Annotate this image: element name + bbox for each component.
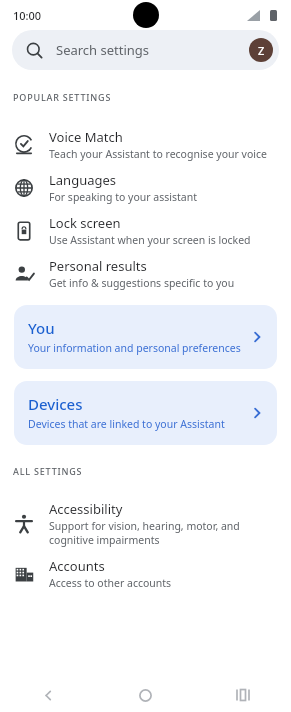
staticText: Voice Match <box>49 128 123 146</box>
button[interactable]: Personal results <box>0 252 291 295</box>
button[interactable]: Home <box>97 678 194 712</box>
button[interactable]: Voice Match <box>0 123 291 166</box>
staticText: Accessibility <box>49 500 123 518</box>
button[interactable]: Recents <box>194 678 291 712</box>
staticText: POPULAR SETTINGS <box>13 91 112 103</box>
button[interactable]: Search settings <box>12 30 279 70</box>
staticText: You <box>28 318 55 338</box>
staticText: Devices that are linked to your Assistan… <box>28 417 225 431</box>
button[interactable]: Accounts <box>0 552 291 595</box>
staticText: For speaking to your assistant <box>49 190 197 204</box>
staticText: Accounts <box>49 557 105 575</box>
button[interactable]: You <box>14 305 277 369</box>
staticText: Lock screen <box>49 214 121 232</box>
button[interactable]: Languages <box>0 166 291 209</box>
staticText: Access to other accounts <box>49 576 172 590</box>
staticText: Search settings <box>56 41 150 59</box>
staticText: 10:00 <box>13 8 42 23</box>
staticText: Your information and personal preference… <box>28 341 241 355</box>
staticText: Z <box>258 43 265 58</box>
staticText: Get info & suggestions specific to you <box>49 276 235 290</box>
staticText: Languages <box>49 171 117 189</box>
button[interactable]: Devices <box>14 381 277 445</box>
staticText: Teach your Assistant to recognise your v… <box>49 147 267 161</box>
staticText: Devices <box>28 394 83 414</box>
button[interactable]: Lock screen <box>0 209 291 252</box>
staticText: ALL SETTINGS <box>13 465 83 477</box>
button[interactable]: Back <box>0 678 97 712</box>
staticText: Use Assistant when your screen is locked <box>49 233 251 247</box>
button[interactable]: Account <box>249 38 273 62</box>
staticText: Personal results <box>49 257 147 275</box>
button[interactable]: Accessibility <box>0 495 291 552</box>
staticText: Support for vision, hearing, motor, and … <box>49 519 275 547</box>
